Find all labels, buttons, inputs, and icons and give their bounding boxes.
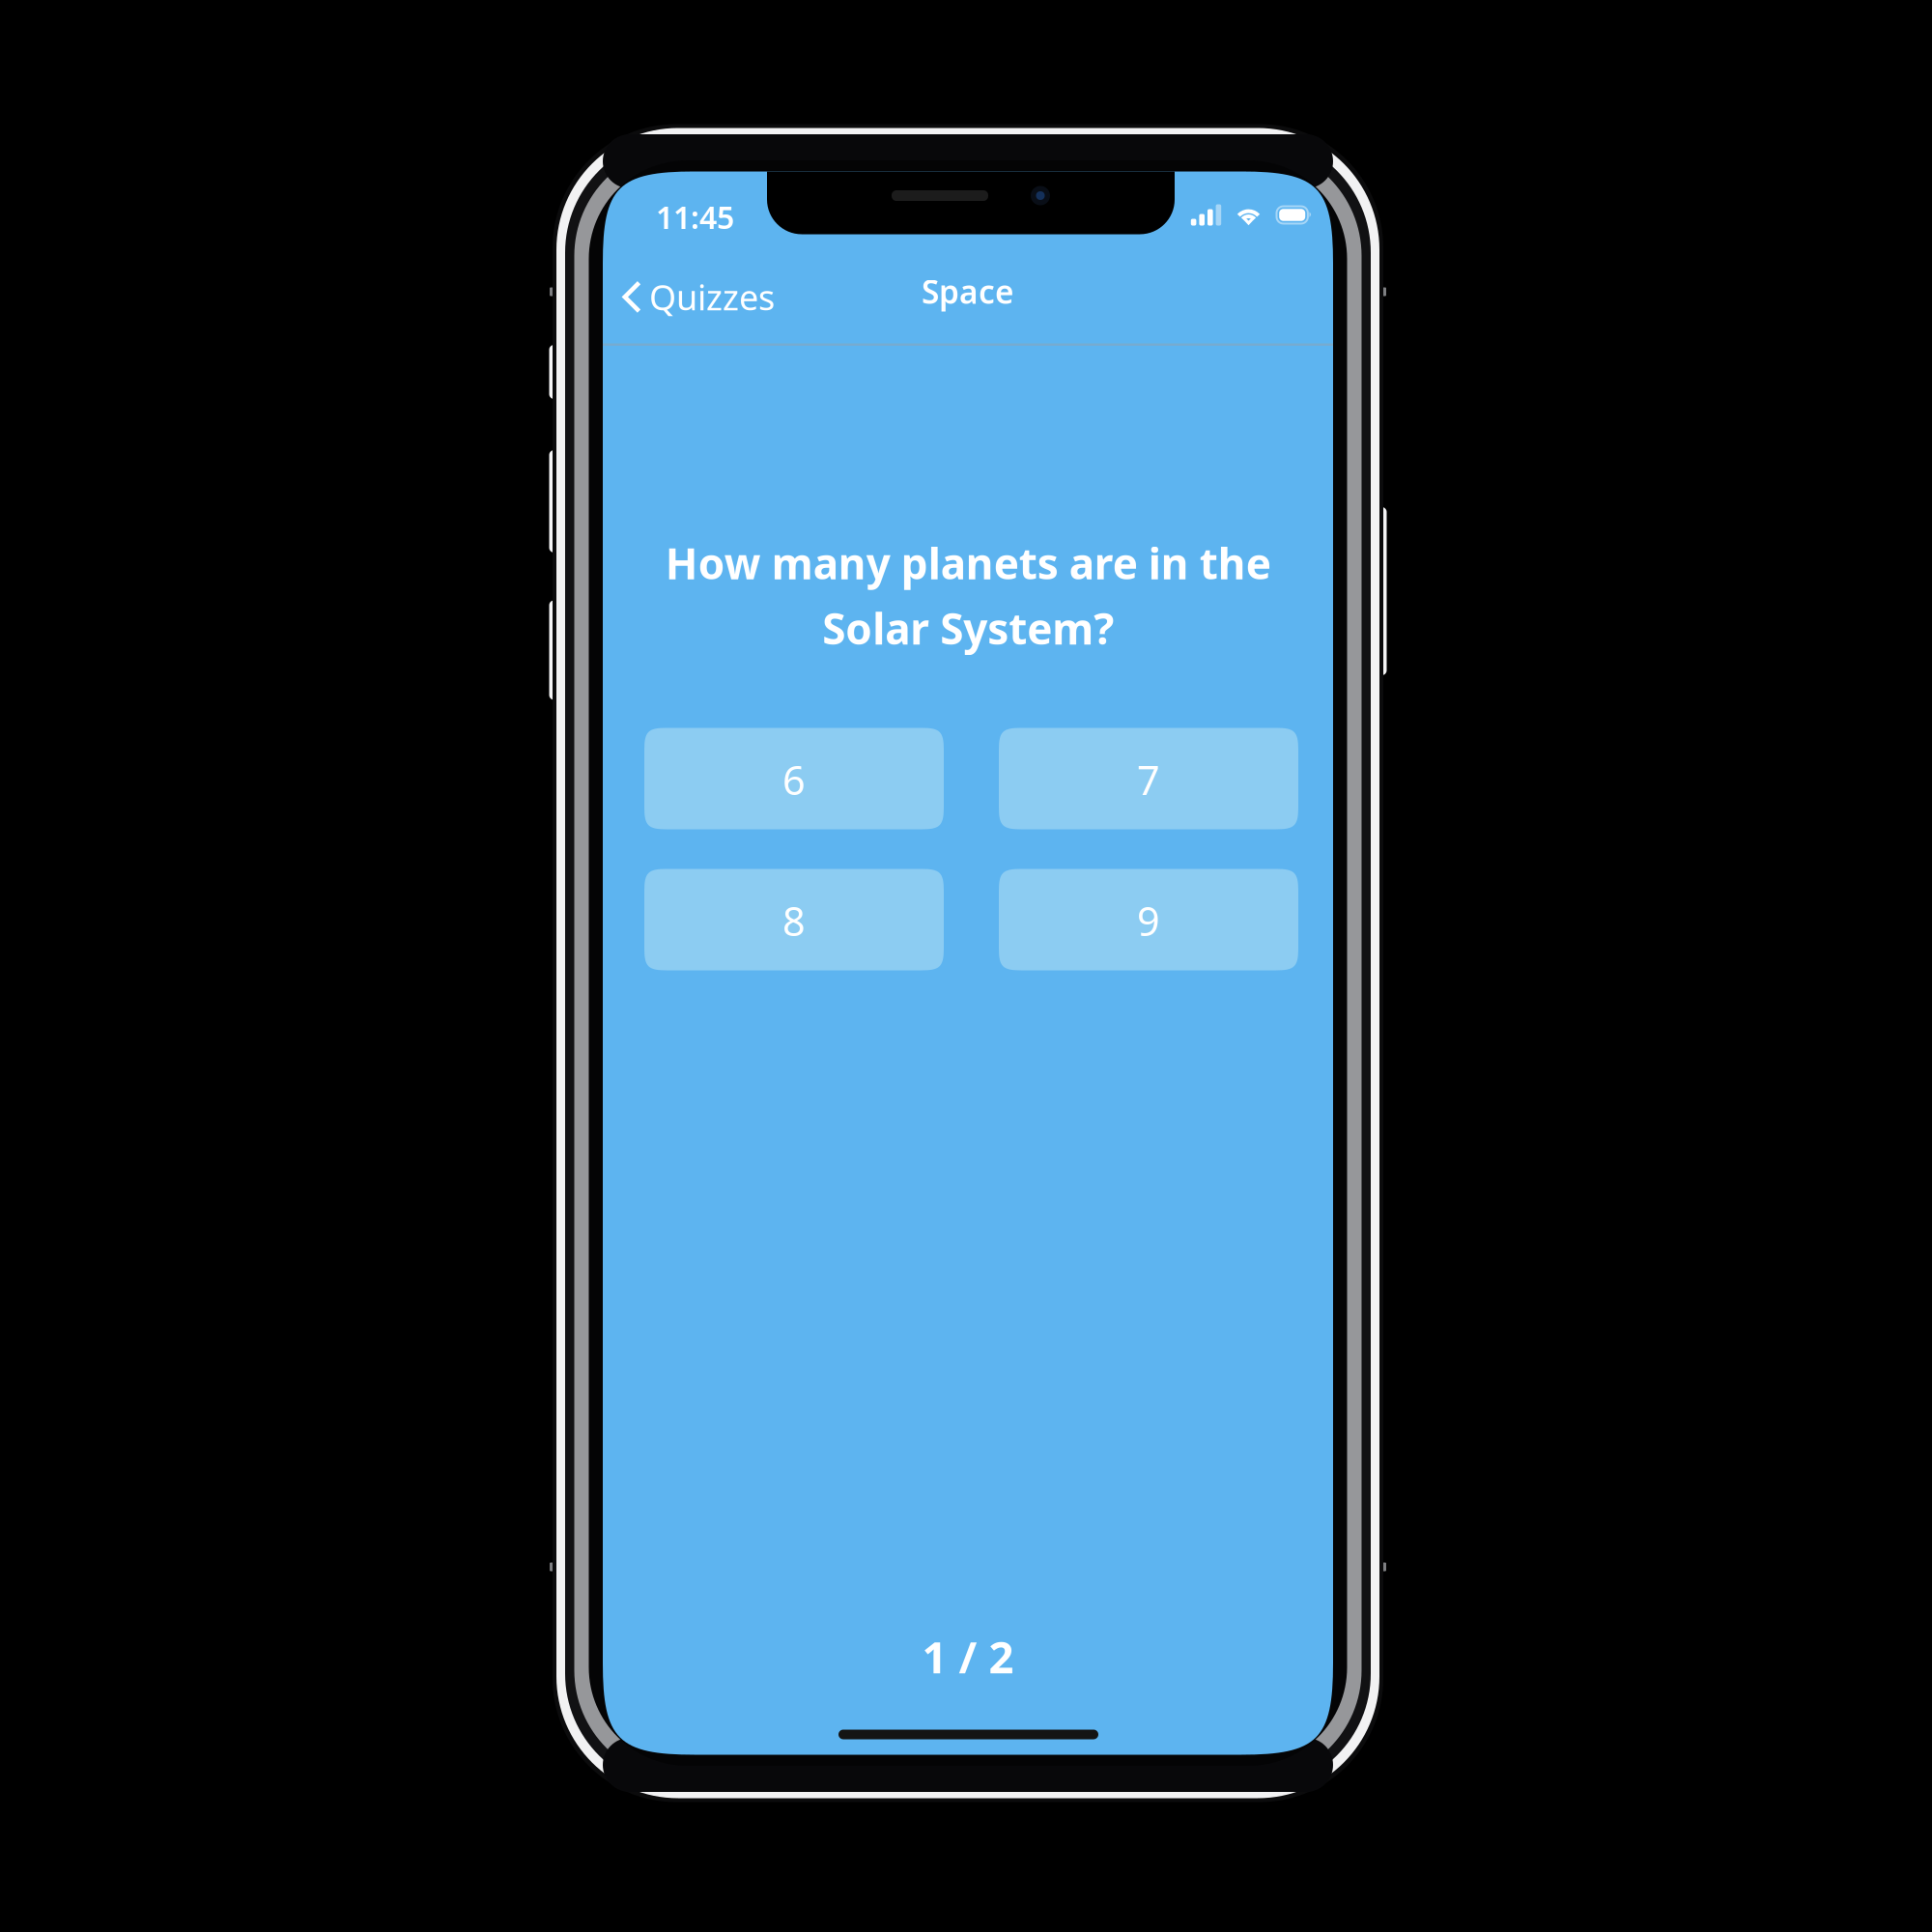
staticText: 7 — [1137, 753, 1160, 806]
staticText: 8 — [782, 894, 806, 947]
staticText: How many planets are in the Solar System… — [665, 535, 1271, 656]
button[interactable]: 6 — [644, 728, 944, 829]
button[interactable]: 9 — [999, 869, 1298, 970]
button[interactable]: Back to Quizzes — [609, 262, 787, 332]
staticText: Space — [922, 270, 1014, 313]
staticText: Quizzes — [649, 274, 775, 320]
button[interactable]: 8 — [644, 869, 944, 970]
staticText: 11:45 — [656, 196, 734, 237]
staticText: 9 — [1137, 894, 1160, 947]
button[interactable]: 7 — [999, 728, 1298, 829]
staticText: 6 — [782, 753, 806, 806]
staticText: 1 / 2 — [922, 1627, 1014, 1685]
